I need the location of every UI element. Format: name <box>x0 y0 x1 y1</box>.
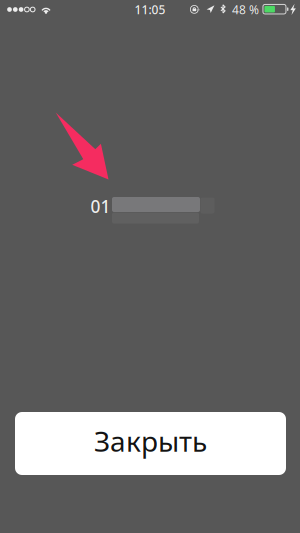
staticText: 11:05 <box>134 2 165 17</box>
staticText: Закрыть <box>94 422 207 460</box>
staticText: 48 % <box>232 1 259 17</box>
staticText: 01 <box>90 195 110 218</box>
button[interactable]: Закрыть <box>15 412 286 475</box>
